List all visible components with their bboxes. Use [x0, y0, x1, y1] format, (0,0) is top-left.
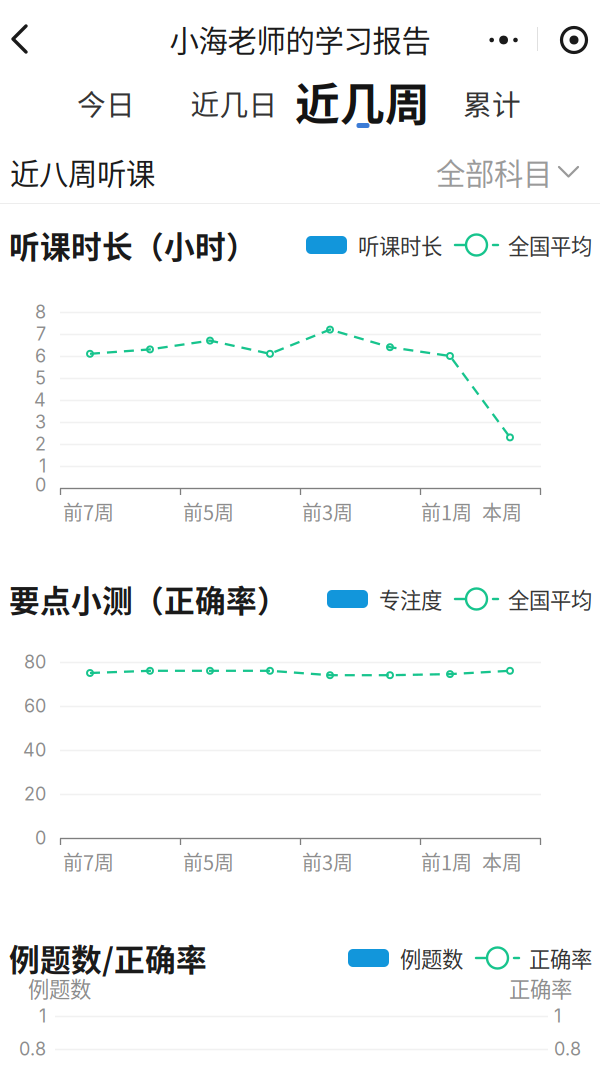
button[interactable]: 近几周 [297, 72, 428, 134]
staticText: 80 [24, 651, 46, 673]
staticText: 5 [35, 367, 46, 389]
staticText: 前5周 [183, 847, 234, 876]
staticText: 例题数 [400, 943, 463, 973]
staticText: 正确率 [509, 973, 572, 1003]
staticText: 1 [39, 455, 46, 477]
staticText: 本周 [482, 497, 522, 526]
staticText: 6 [35, 345, 46, 367]
button[interactable]: Capsule menu [470, 14, 600, 66]
staticText: 0 [35, 827, 46, 849]
staticText: 专注度 [379, 584, 442, 614]
staticText: 60 [24, 695, 46, 717]
staticText: 近几日 [190, 82, 277, 124]
staticText: 前3周 [302, 497, 353, 526]
button[interactable]: Back [0, 0, 48, 78]
staticText: 1 [39, 1005, 46, 1027]
staticText: 7 [36, 323, 46, 345]
staticText: 0.8 [554, 1038, 581, 1060]
staticText: 前5周 [183, 497, 234, 526]
staticText: 0.8 [19, 1038, 46, 1060]
staticText: 4 [34, 389, 46, 411]
staticText: 今日 [77, 82, 135, 124]
staticText: 前3周 [302, 847, 353, 876]
staticText: 全国平均 [508, 584, 592, 614]
button[interactable]: 近几日 [193, 72, 275, 134]
button[interactable]: More [470, 14, 536, 66]
staticText: 正确率 [529, 943, 592, 973]
staticText: 前7周 [63, 847, 114, 876]
staticText: 要点小测（正确率） [9, 577, 288, 621]
staticText: 前1周 [421, 847, 472, 876]
staticText: 全部科目 [436, 151, 552, 193]
staticText: 全国平均 [508, 230, 592, 260]
button[interactable]: 全部科目 [436, 143, 586, 201]
staticText: 近八周听课 [10, 151, 155, 193]
staticText: 前7周 [63, 497, 114, 526]
staticText: 8 [35, 301, 46, 323]
staticText: 1 [554, 1005, 561, 1027]
staticText: 例题数/正确率 [9, 936, 207, 980]
staticText: 例题数 [28, 973, 91, 1003]
staticText: 累计 [463, 82, 521, 124]
staticText: 前1周 [421, 497, 472, 526]
staticText: 3 [35, 411, 46, 433]
button[interactable]: 今日 [80, 72, 132, 134]
staticText: 小海老师的学习报告 [169, 18, 430, 60]
button[interactable]: 累计 [463, 72, 521, 134]
staticText: 0 [35, 474, 46, 496]
staticText: 听课时长（小时） [9, 223, 257, 267]
staticText: 本周 [482, 847, 522, 876]
staticText: 2 [35, 433, 46, 455]
staticText: 近几周 [295, 69, 430, 133]
staticText: 听课时长 [358, 230, 442, 260]
staticText: 20 [24, 783, 46, 805]
staticText: 40 [23, 739, 46, 761]
